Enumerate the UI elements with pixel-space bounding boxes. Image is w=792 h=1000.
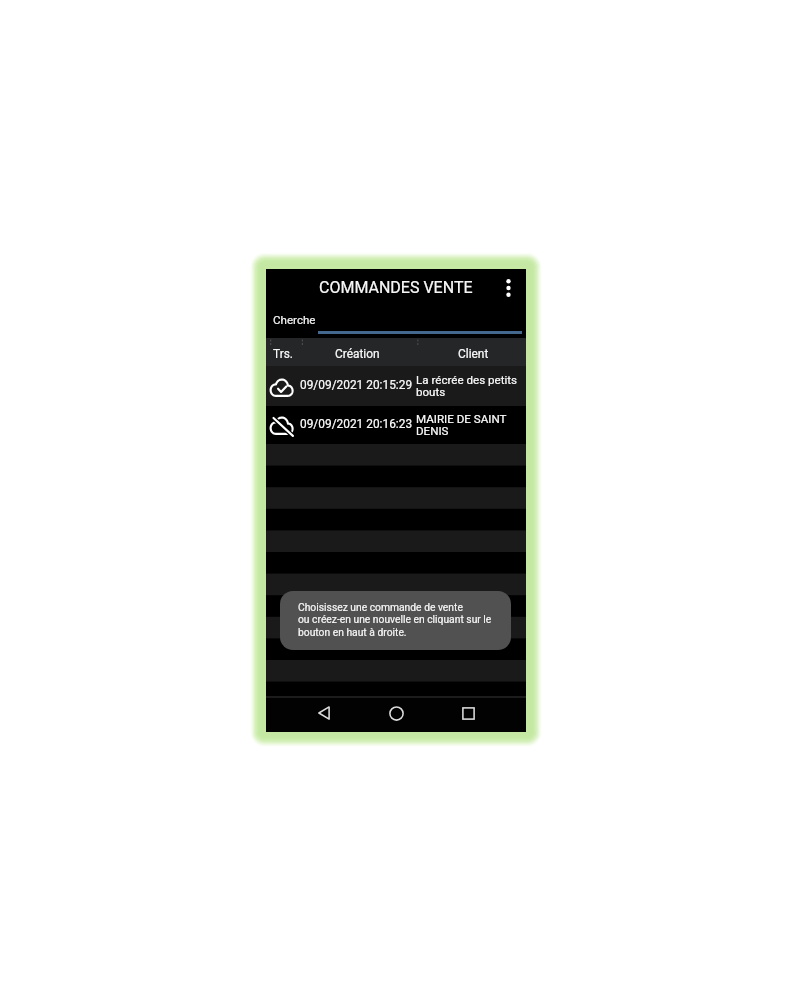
staticText: 09/09/2021 20:15:29	[300, 378, 413, 392]
staticText: Choisissez une commande de vente ou crée…	[298, 601, 492, 639]
button[interactable]: Back	[303, 696, 345, 732]
button[interactable]: Home	[375, 696, 417, 732]
staticText: La récrée des petits bouts	[416, 373, 526, 399]
staticText: Client	[458, 347, 489, 361]
button[interactable]: More options	[499, 269, 517, 306]
staticText: Trs.	[273, 347, 293, 361]
button[interactable]: 09/09/2021 20:15:29	[266, 366, 526, 406]
button[interactable]: 09/09/2021 20:16:23	[266, 406, 526, 444]
button[interactable]: Choisissez une commande de vente ou crée…	[280, 591, 511, 650]
staticText: 09/09/2021 20:16:23	[300, 417, 413, 431]
staticText: COMMANDES VENTE	[319, 278, 473, 297]
staticText: Cherche	[273, 313, 316, 327]
staticText: MAIRIE DE SAINT DENIS	[416, 412, 526, 438]
button[interactable]: Recent apps	[447, 696, 489, 732]
button[interactable]	[266, 444, 526, 696]
staticText: Création	[335, 347, 380, 361]
